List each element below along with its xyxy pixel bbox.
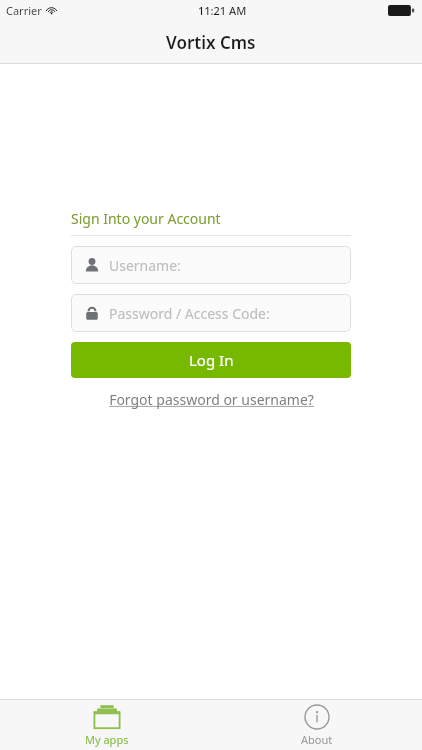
- staticText: 11:21 AM: [198, 3, 247, 18]
- button[interactable]: My apps: [71, 701, 143, 750]
- staticText: Sign Into your Account: [71, 209, 221, 228]
- button[interactable]: About: [287, 701, 347, 750]
- staticText: About: [301, 732, 333, 747]
- staticText: My apps: [85, 732, 129, 747]
- button[interactable]: Forgot password or username?: [109, 390, 314, 409]
- button[interactable]: Password / Access Code:: [71, 294, 351, 332]
- button[interactable]: Username:: [71, 246, 351, 284]
- staticText: Username:: [109, 256, 181, 275]
- staticText: Password / Access Code:: [109, 304, 270, 323]
- staticText: Vortix Cms: [166, 31, 256, 54]
- staticText: Log In: [189, 350, 234, 370]
- staticText: Carrier: [6, 3, 42, 18]
- button[interactable]: Log In: [71, 342, 351, 378]
